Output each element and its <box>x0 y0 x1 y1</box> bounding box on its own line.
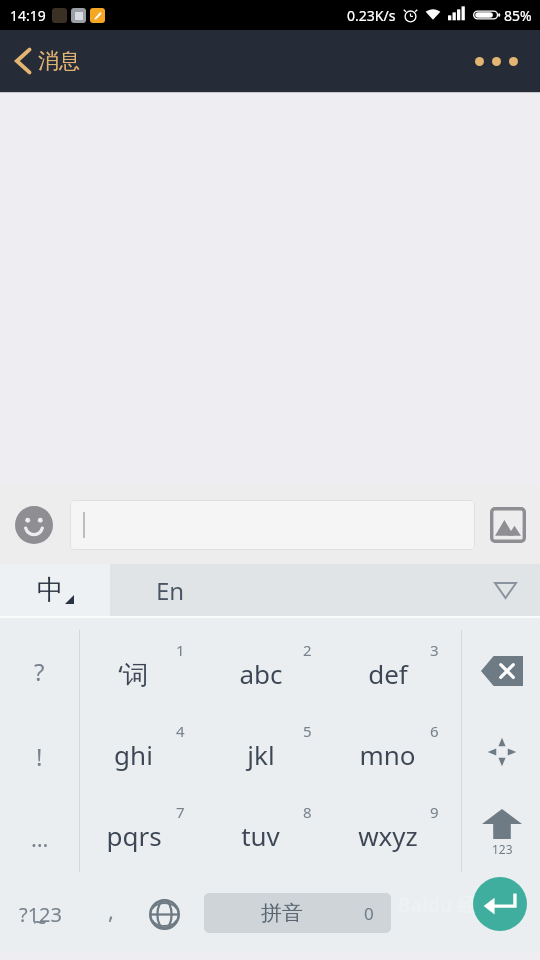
staticText: 0 <box>364 902 374 925</box>
button[interactable]: pqrs <box>80 792 207 873</box>
button[interactable]: Move cursor <box>463 711 540 792</box>
staticText: En <box>156 574 185 607</box>
staticText: mno <box>359 737 416 772</box>
staticText: 消息 <box>38 48 80 74</box>
staticText: 14:19 <box>10 6 46 25</box>
staticText: Baidu 经验 <box>398 892 495 918</box>
staticText: def <box>368 656 408 691</box>
staticText: wxyz <box>358 818 418 853</box>
staticText: ! <box>36 740 43 773</box>
staticText: … <box>31 823 49 853</box>
staticText: pqrs <box>106 818 162 853</box>
button[interactable]: 消息 <box>0 30 540 92</box>
button[interactable]: abc <box>207 630 334 711</box>
button[interactable]: wxyz <box>334 792 461 873</box>
button[interactable]: Emoji <box>15 506 53 544</box>
staticText: abc <box>239 656 283 691</box>
button[interactable]: jkl <box>207 711 334 792</box>
button[interactable]: En <box>110 564 540 616</box>
button[interactable]: Send image <box>488 505 528 545</box>
button[interactable]: Switch language <box>135 876 193 952</box>
staticText: jkl <box>247 737 275 772</box>
staticText: ~ <box>33 905 47 938</box>
staticText: 123 <box>492 841 513 857</box>
staticText: ? <box>34 655 45 688</box>
button[interactable]: Switch to numbers <box>463 792 540 873</box>
staticText: 2 <box>303 640 312 660</box>
button[interactable]: 拼音 <box>204 893 391 933</box>
staticText: 5 <box>303 721 312 741</box>
button[interactable]: , <box>80 876 142 952</box>
staticText: ghi <box>114 737 153 772</box>
staticText: 8 <box>303 802 312 822</box>
button[interactable]: ghi <box>80 711 207 792</box>
staticText: ?123 <box>19 901 62 928</box>
staticText: tuv <box>241 818 280 853</box>
staticText: , <box>108 895 114 925</box>
button[interactable]: Backspace <box>463 630 540 711</box>
button[interactable]: tuv <box>207 792 334 873</box>
button[interactable]: ? <box>0 630 79 712</box>
button[interactable]: mno <box>334 711 461 792</box>
button[interactable]: def <box>334 630 461 711</box>
button[interactable]: More options <box>467 49 526 74</box>
button[interactable]: ‘词 <box>80 630 207 711</box>
button[interactable]: 中 <box>0 564 110 616</box>
staticText: 7 <box>176 802 185 822</box>
button[interactable] <box>70 500 475 550</box>
staticText: 1 <box>176 640 185 660</box>
button[interactable]: ! <box>0 715 79 797</box>
button[interactable]: Collapse keyboard <box>492 577 518 603</box>
staticText: 中 <box>37 573 64 607</box>
staticText: 6 <box>430 721 439 741</box>
staticText: ‘词 <box>118 656 149 692</box>
button[interactable]: ?123 <box>0 876 80 952</box>
button[interactable]: … <box>0 797 79 879</box>
staticText: 3 <box>430 640 439 660</box>
staticText: 拼音 <box>261 900 303 926</box>
staticText: 4 <box>176 721 185 741</box>
staticText: 9 <box>430 802 439 822</box>
button[interactable]: Send <box>473 877 527 931</box>
staticText: 85% <box>504 6 532 25</box>
button[interactable]: ~ <box>0 880 79 960</box>
staticText: 0.23K/s <box>347 6 396 25</box>
